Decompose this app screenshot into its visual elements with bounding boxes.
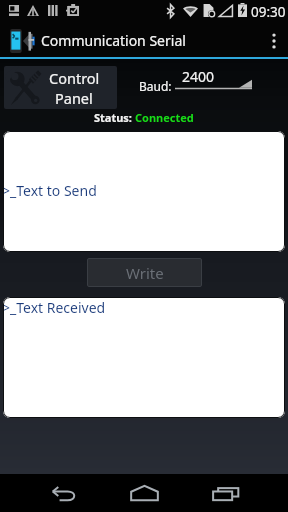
button[interactable]: Write: [87, 258, 202, 287]
staticText: Control: [49, 68, 100, 88]
button[interactable]: Home: [120, 480, 168, 512]
staticText: Communication Serial: [41, 31, 186, 50]
button[interactable]: Control: [4, 66, 117, 109]
button[interactable]: More options: [260, 24, 288, 57]
button[interactable]: 2400: [175, 67, 252, 101]
staticText: Write: [126, 263, 164, 283]
staticText: Connected: [135, 110, 194, 125]
staticText: >_Text Received: [3, 298, 106, 317]
button[interactable]: Back: [40, 480, 88, 512]
staticText: >_Text to Send: [3, 181, 97, 200]
staticText: Baud:: [139, 78, 172, 94]
button[interactable]: >_Text Received: [3, 297, 285, 418]
staticText: Panel: [55, 88, 93, 108]
button[interactable]: >_Text to Send: [3, 131, 285, 252]
staticText: Status:: [94, 110, 135, 125]
button[interactable]: Recent apps: [202, 480, 250, 512]
staticText: 09:30: [251, 3, 286, 21]
staticText: 2400: [182, 67, 215, 86]
